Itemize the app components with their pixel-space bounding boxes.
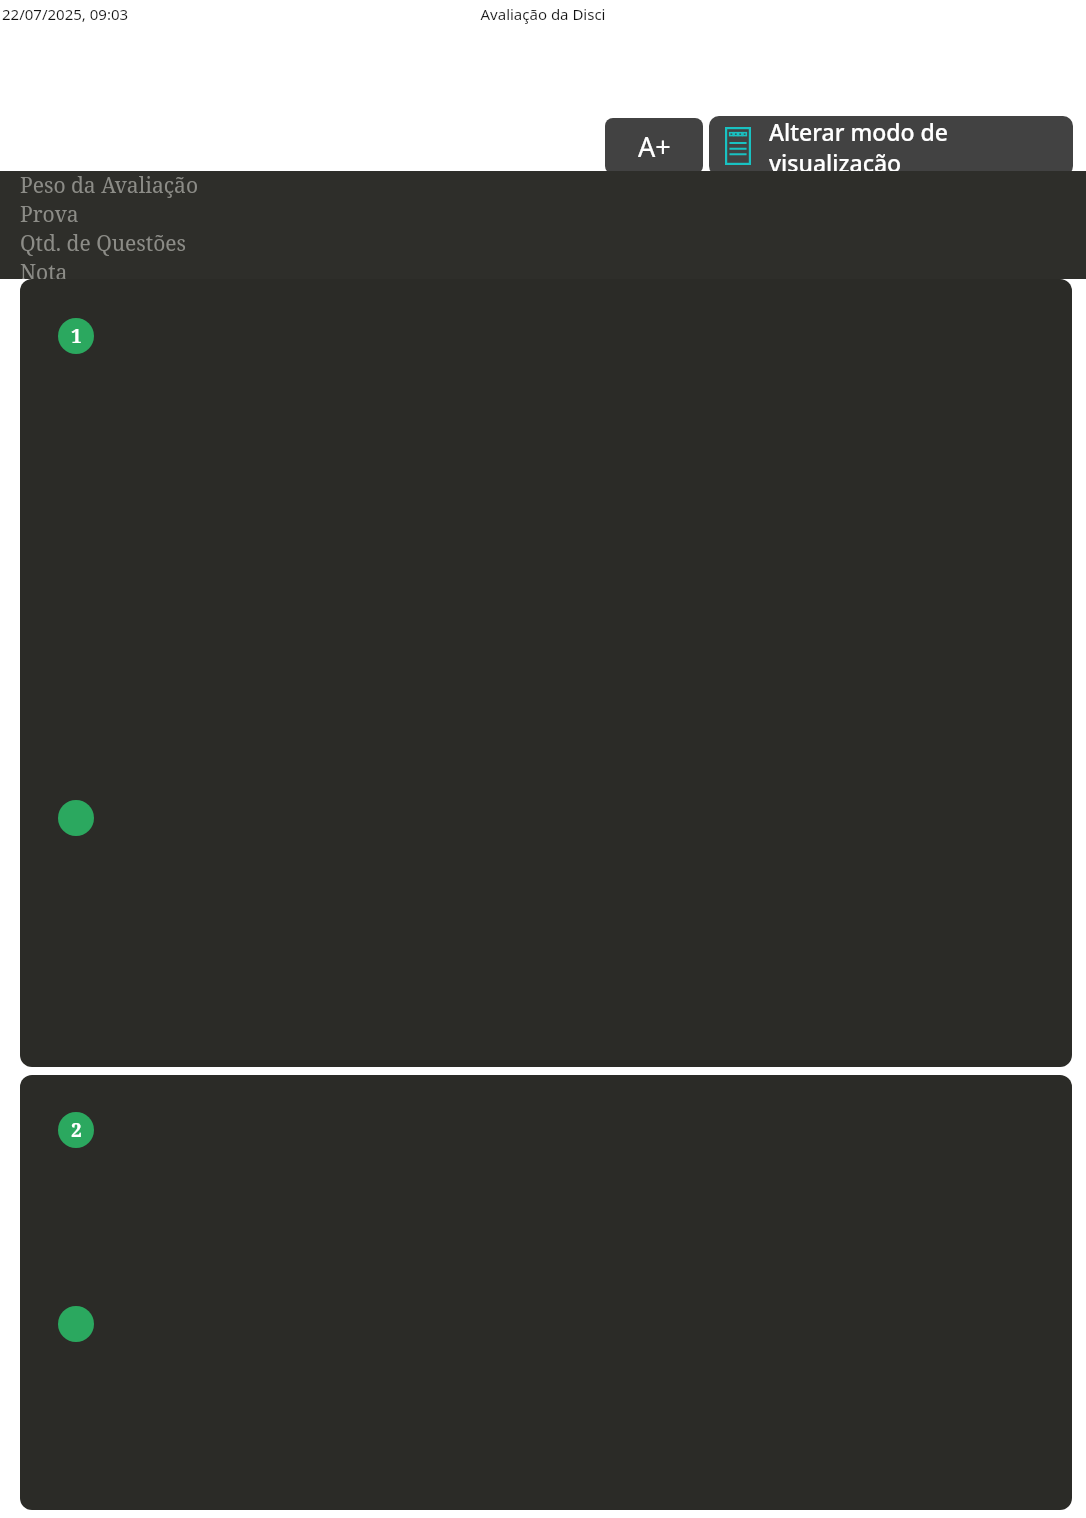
button[interactable]: 1 — [20, 279, 1072, 1067]
button[interactable]: 2 — [20, 1075, 1072, 1510]
other: Alterar modo de visualização — [725, 127, 751, 165]
staticText: 1 — [71, 323, 82, 349]
staticText: 2 — [71, 1117, 82, 1143]
staticText: A+ — [638, 128, 671, 165]
staticText: Avaliação da Disci — [0, 4, 1086, 24]
staticText: Qtd. de Questões — [20, 229, 187, 258]
staticText: Peso da Avaliação — [20, 171, 198, 200]
button[interactable]: A+ — [605, 118, 703, 174]
staticText: 22/07/2025, 09:03 — [2, 4, 129, 24]
button[interactable]: Alterar modo de visualização — [709, 116, 1073, 176]
staticText: Prova — [20, 200, 79, 229]
staticText: Alterar modo de visualização — [769, 116, 1057, 176]
staticText: Nota — [20, 258, 68, 279]
